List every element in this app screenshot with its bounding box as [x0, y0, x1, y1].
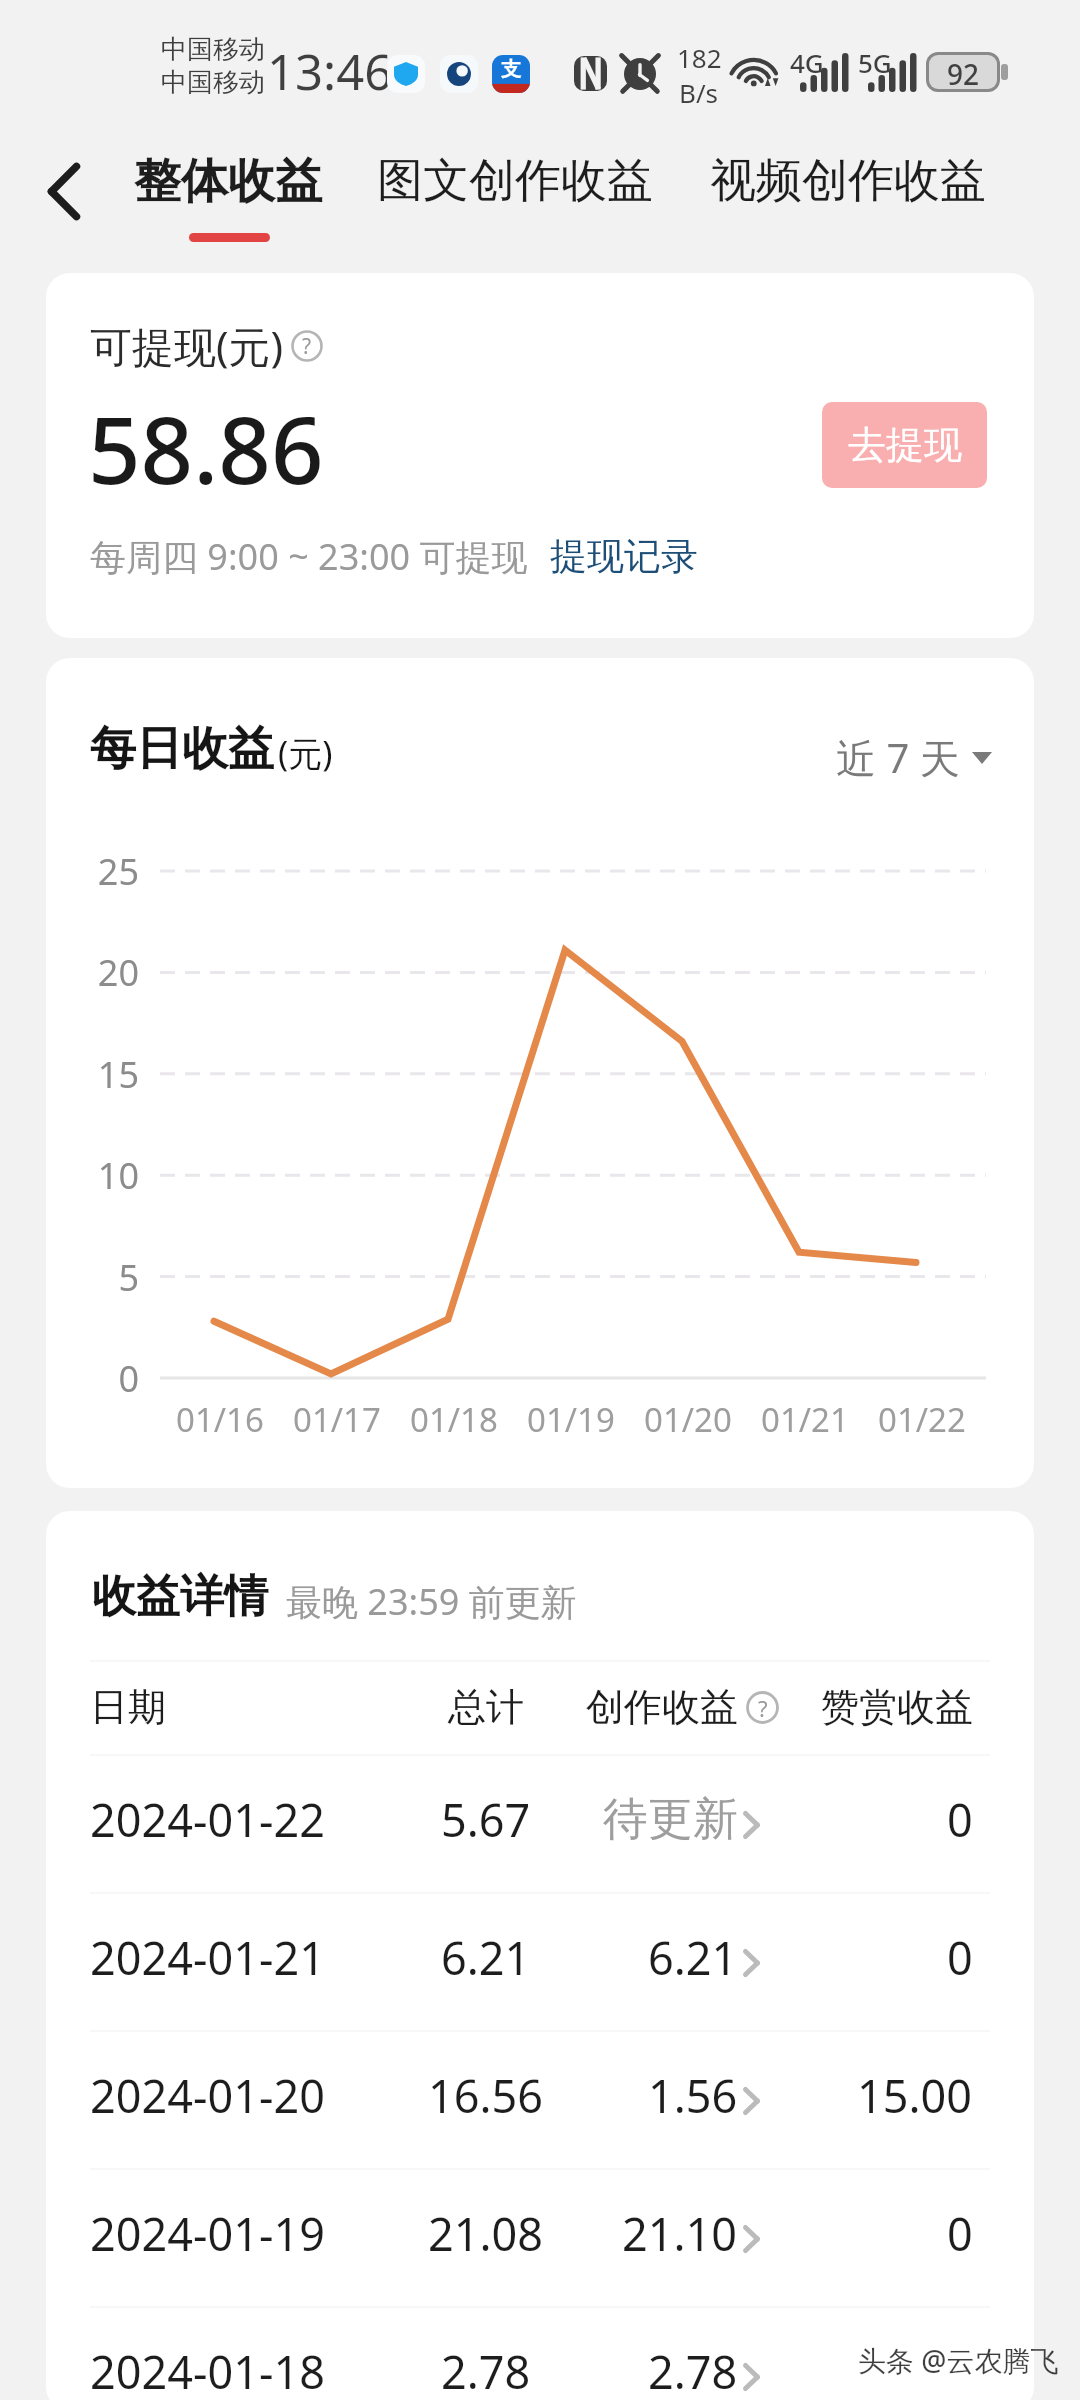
- staticText: 10: [97, 1151, 139, 1200]
- staticText: 创作收益: [586, 1683, 738, 1731]
- staticText: 每周四 9:00 ~ 23:00 可提现: [90, 532, 528, 581]
- staticText: 16.56: [428, 2065, 544, 2126]
- staticText: 2.78: [648, 2341, 738, 2400]
- button[interactable]: 近 7 天: [836, 730, 992, 785]
- staticText: 2024-01-20: [90, 2065, 325, 2126]
- staticText: 视频创作收益: [710, 152, 986, 210]
- staticText: 21.10: [622, 2203, 738, 2264]
- staticText: 20: [97, 948, 139, 997]
- staticText: 4G: [790, 45, 824, 80]
- staticText: 中国移动: [161, 66, 265, 99]
- staticText: 总计: [448, 1683, 524, 1731]
- button[interactable]: 2024-01-21: [46, 1888, 1034, 2026]
- staticText: 每日收益: [90, 720, 274, 778]
- staticText: 0: [118, 1354, 139, 1403]
- button[interactable]: 视频创作收益: [710, 152, 986, 210]
- staticText: 92: [947, 55, 980, 89]
- staticText: 2024-01-18: [90, 2341, 325, 2400]
- button[interactable]: 2024-01-20: [46, 2026, 1034, 2164]
- staticText: 中国移动: [161, 33, 265, 66]
- staticText: 01/17: [293, 1397, 381, 1442]
- staticText: 25: [97, 847, 139, 896]
- staticText: 支: [501, 57, 521, 82]
- staticText: 待更新: [603, 1791, 738, 1848]
- staticText: 收益详情: [92, 1569, 268, 1624]
- staticText: 01/16: [176, 1397, 264, 1442]
- staticText: ?: [302, 332, 312, 361]
- staticText: 0: [947, 1927, 973, 1988]
- staticText: 15.00: [857, 2065, 973, 2126]
- button[interactable]: Help: [291, 330, 323, 362]
- staticText: 01/21: [761, 1397, 849, 1442]
- staticText: 6.21: [441, 1927, 531, 1988]
- staticText: 21.08: [428, 2203, 544, 2264]
- staticText: 58.86: [88, 386, 324, 511]
- staticText: 01/19: [527, 1397, 615, 1442]
- button[interactable]: Back: [32, 159, 96, 223]
- staticText: 近 7 天: [836, 730, 960, 785]
- button[interactable]: 2024-01-19: [46, 2164, 1034, 2302]
- staticText: 5.67: [441, 1789, 531, 1850]
- staticText: 整体收益: [134, 152, 322, 211]
- staticText: 0: [947, 2203, 973, 2264]
- staticText: 01/20: [644, 1397, 732, 1442]
- staticText: 182: [677, 40, 722, 75]
- staticText: 最晚 23:59 前更新: [286, 1577, 577, 1626]
- staticText: 6.21: [648, 1927, 738, 1988]
- button[interactable]: 2024-01-18: [46, 2302, 1034, 2400]
- staticText: 15: [97, 1050, 139, 1099]
- staticText: 1.56: [648, 2065, 738, 2126]
- staticText: 2024-01-19: [90, 2203, 325, 2264]
- staticText: 01/22: [878, 1397, 966, 1442]
- staticText: 头条 @云农腾飞: [858, 2341, 1059, 2379]
- staticText: 01/18: [410, 1397, 498, 1442]
- button[interactable]: 图文创作收益: [377, 152, 653, 210]
- staticText: 赞赏收益: [821, 1683, 973, 1731]
- staticText: 2024-01-22: [90, 1789, 325, 1850]
- staticText: 0: [947, 1789, 973, 1850]
- staticText: 13:46: [267, 38, 393, 105]
- staticText: 去提现: [848, 421, 962, 469]
- staticText: 2024-01-21: [90, 1927, 325, 1988]
- button[interactable]: 去提现: [822, 402, 987, 488]
- staticText: 5G: [858, 45, 892, 80]
- button[interactable]: 整体收益: [134, 152, 322, 211]
- staticText: B/s: [679, 75, 719, 110]
- staticText: 5: [118, 1253, 139, 1302]
- staticText: (元): [278, 730, 333, 776]
- button[interactable]: 提现记录: [550, 533, 698, 580]
- staticText: 提现记录: [550, 533, 698, 580]
- staticText: 图文创作收益: [377, 152, 653, 210]
- button[interactable]: 2024-01-22: [46, 1750, 1034, 1888]
- staticText: ?: [758, 1693, 768, 1723]
- staticText: 2.78: [441, 2341, 531, 2400]
- staticText: 可提现(元): [90, 317, 284, 374]
- staticText: 日期: [90, 1683, 166, 1731]
